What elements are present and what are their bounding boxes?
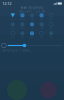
staticText: IMG_2481 · 2.4 MB bbox=[18, 10, 45, 13]
staticText: More bbox=[49, 18, 53, 20]
button[interactable]: Books bbox=[27, 30, 37, 38]
button[interactable]: Notes bbox=[37, 12, 46, 20]
staticText: Mail bbox=[31, 18, 33, 20]
staticText: Music bbox=[40, 36, 44, 38]
button[interactable]: Save bbox=[18, 21, 27, 29]
button[interactable]: Mail bbox=[27, 12, 37, 20]
button[interactable]: Home bbox=[8, 30, 18, 38]
staticText: Files bbox=[21, 36, 24, 38]
button[interactable]: Print bbox=[27, 21, 37, 29]
button[interactable]: Copy bbox=[8, 21, 18, 29]
staticText: Message bbox=[19, 18, 26, 20]
button[interactable]: More bbox=[46, 12, 56, 20]
button[interactable]: AirDrop bbox=[8, 12, 18, 20]
staticText: Sending to 1 device… bbox=[2, 49, 32, 52]
button[interactable]: Info bbox=[46, 21, 56, 29]
button[interactable]: Message bbox=[18, 12, 27, 20]
button[interactable]: Cloud bbox=[46, 30, 56, 38]
staticText: AirDrop bbox=[10, 18, 16, 20]
button[interactable]: Music bbox=[37, 30, 46, 38]
staticText: Share this photo bbox=[20, 6, 43, 9]
staticText: 12:12 bbox=[2, 1, 11, 6]
button[interactable]: Files bbox=[18, 30, 27, 38]
button[interactable]: Edit bbox=[37, 21, 46, 29]
staticText: Notes bbox=[40, 18, 44, 20]
staticText: Home bbox=[11, 36, 15, 38]
